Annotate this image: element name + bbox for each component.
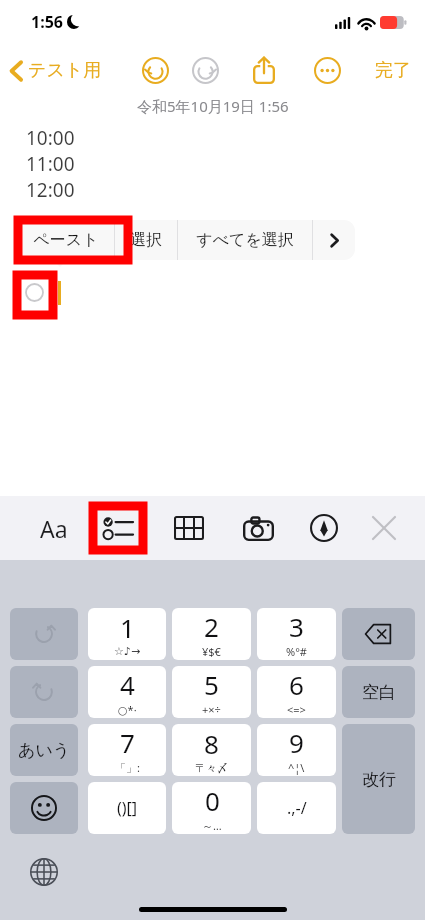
staticText: 4	[120, 667, 135, 702]
staticText: 1:56	[31, 11, 63, 33]
staticText: 〒々〆	[195, 761, 228, 775]
button[interactable]: Camera	[236, 506, 280, 550]
button[interactable]: Close keyboard	[362, 506, 406, 550]
staticText: 11:00	[26, 151, 75, 177]
button[interactable]: 完了	[361, 53, 425, 88]
staticText: 空白	[362, 682, 396, 703]
staticText: 1	[120, 610, 135, 645]
staticText: テスト用	[28, 59, 102, 82]
button[interactable]: 6	[257, 666, 336, 718]
button[interactable]: 8	[172, 724, 251, 776]
staticText: Aa	[40, 513, 68, 544]
staticText: 「」:	[115, 760, 140, 775]
button[interactable]: ペースト	[18, 220, 114, 260]
staticText: 9	[289, 725, 304, 760]
button[interactable]: 5	[172, 666, 251, 718]
button[interactable]: emoji	[10, 782, 78, 834]
button[interactable]: redo	[10, 608, 78, 660]
staticText: ○*·	[118, 702, 137, 717]
staticText: すべてを選択	[196, 230, 294, 250]
button[interactable]: Switch keyboard	[22, 850, 66, 894]
button[interactable]: Undo	[138, 53, 172, 87]
button[interactable]: 1	[88, 608, 166, 660]
staticText: 8	[204, 726, 219, 761]
button[interactable]: 選択	[115, 220, 177, 260]
button[interactable]: Text format	[32, 506, 76, 550]
staticText: +×÷	[202, 702, 221, 717]
staticText: %°#	[286, 644, 307, 659]
button[interactable]: あいう	[10, 724, 78, 776]
button[interactable]: 改行	[342, 724, 415, 834]
staticText: 2	[204, 609, 219, 644]
button[interactable]: Share	[246, 52, 282, 88]
staticText: 6	[289, 667, 304, 702]
button[interactable]: 0	[172, 782, 251, 834]
button[interactable]: 2	[172, 608, 251, 660]
staticText: 5	[204, 667, 219, 702]
button[interactable]: undo	[10, 666, 78, 718]
button[interactable]: Redo	[188, 53, 222, 87]
staticText: ～…	[202, 818, 222, 833]
staticText: .,-/	[287, 797, 307, 819]
staticText: 選択	[130, 230, 162, 250]
staticText: ☆♪→	[114, 645, 141, 658]
button[interactable]: Markup	[302, 506, 346, 550]
staticText: 10:00	[26, 125, 75, 151]
button[interactable]: 4	[88, 666, 166, 718]
staticText: ^¦\	[288, 760, 305, 775]
button[interactable]: 3	[257, 608, 336, 660]
staticText: ()[]	[117, 797, 138, 819]
button[interactable]: More options	[310, 53, 344, 87]
button[interactable]: Table	[167, 506, 211, 550]
button[interactable]: .,-/	[257, 782, 336, 834]
staticText: ペースト	[33, 230, 99, 250]
button[interactable]: Checklist	[96, 506, 140, 550]
staticText: 0	[205, 783, 220, 818]
staticText: 令和5年10月19日 1:56	[137, 96, 289, 116]
button[interactable]: More	[313, 220, 355, 260]
staticText: あいう	[18, 740, 71, 761]
button[interactable]: ()[]	[88, 782, 166, 834]
staticText: 12:00	[26, 177, 75, 203]
staticText: 完了	[375, 59, 411, 82]
staticText: 改行	[362, 769, 396, 790]
button[interactable]: テスト用	[0, 55, 110, 86]
staticText: 7	[120, 725, 135, 760]
button[interactable]: 空白	[342, 666, 415, 718]
button[interactable]: 7	[88, 724, 166, 776]
staticText: <=>	[287, 702, 306, 717]
staticText: 3	[289, 609, 304, 644]
button[interactable]: 9	[257, 724, 336, 776]
button[interactable]: すべてを選択	[178, 220, 312, 260]
staticText: ¥$€	[202, 644, 221, 659]
button[interactable]: del	[342, 608, 415, 660]
